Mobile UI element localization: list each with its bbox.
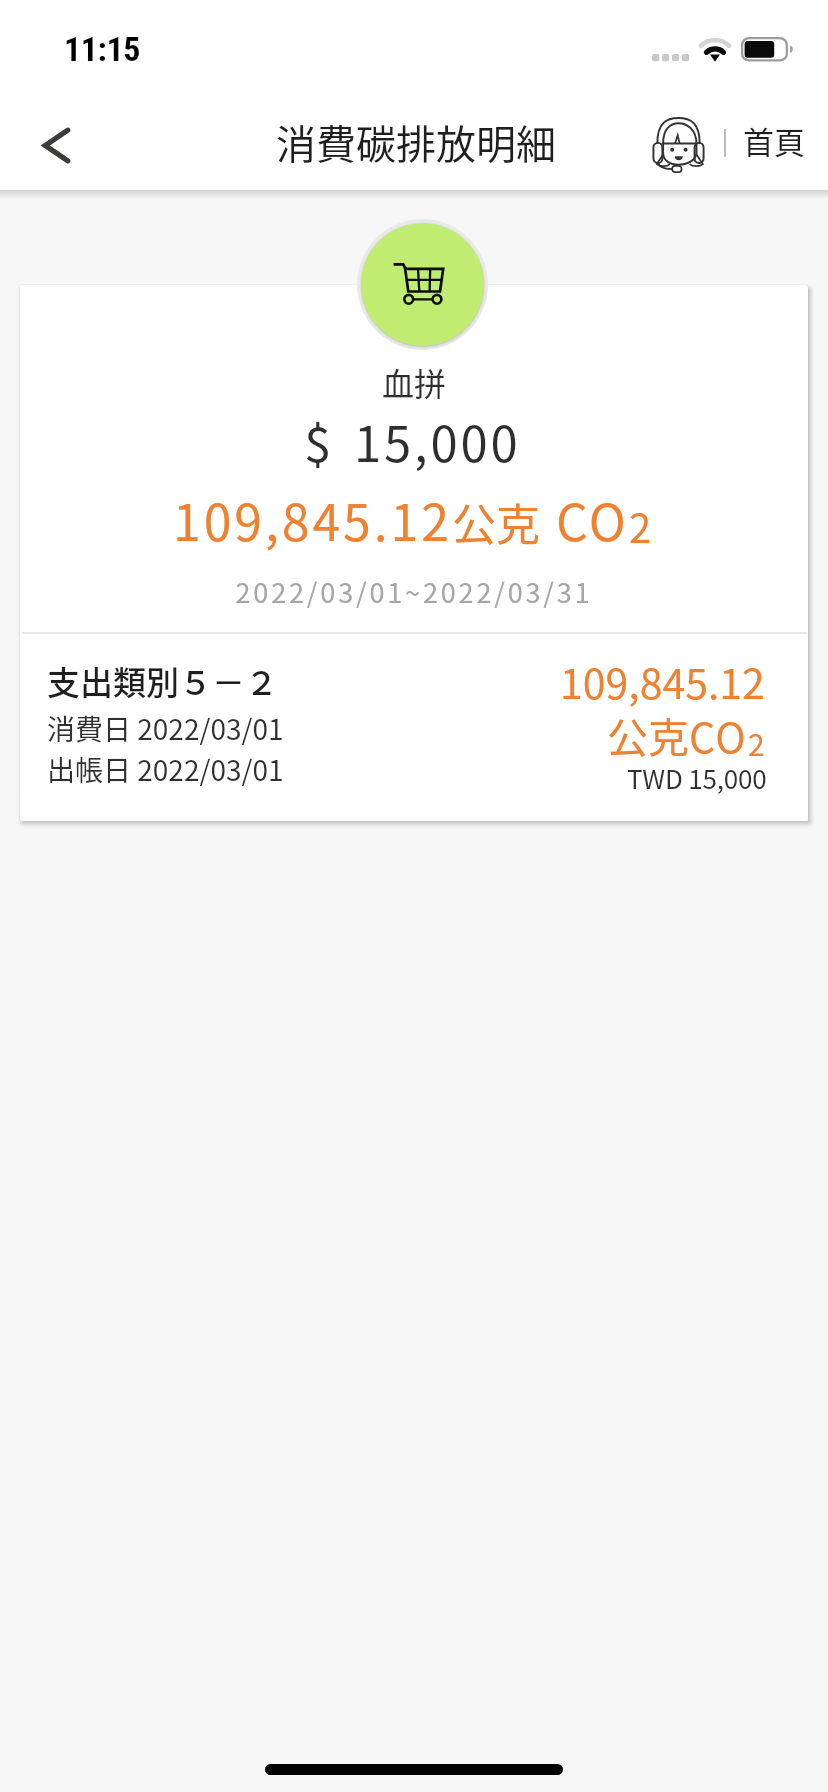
staticText: 出帳日 2022/03/01 xyxy=(47,749,284,790)
staticText: 2 xyxy=(748,721,765,764)
staticText: CO xyxy=(689,705,748,764)
staticText: 109,845.12 xyxy=(560,651,765,710)
staticText: CO xyxy=(556,483,629,555)
staticText: 公克 xyxy=(452,490,540,554)
staticText: 消費碳排放明細 xyxy=(276,113,556,171)
staticText: 2022/03/01~2022/03/31 xyxy=(20,572,808,611)
staticText: 首頁 xyxy=(743,118,805,163)
button[interactable]: 支出類別５－２ xyxy=(20,634,808,821)
staticText: 支出類別５－２ xyxy=(47,657,278,705)
staticText: 公克 xyxy=(607,705,689,764)
button[interactable]: 首頁 xyxy=(736,111,812,169)
staticText: 消費日 2022/03/01 xyxy=(47,708,284,749)
staticText: TWD 15,000 xyxy=(627,759,767,797)
staticText: 2 xyxy=(629,497,652,555)
button[interactable]: Back xyxy=(17,110,95,180)
button[interactable]: Customer service xyxy=(645,110,711,180)
staticText: 11:15 xyxy=(64,29,141,69)
staticText: 15,000 xyxy=(354,405,521,476)
staticText: $ xyxy=(304,405,332,476)
staticText: 血拼 xyxy=(20,359,808,405)
staticText: 109,845.12 xyxy=(173,483,452,555)
